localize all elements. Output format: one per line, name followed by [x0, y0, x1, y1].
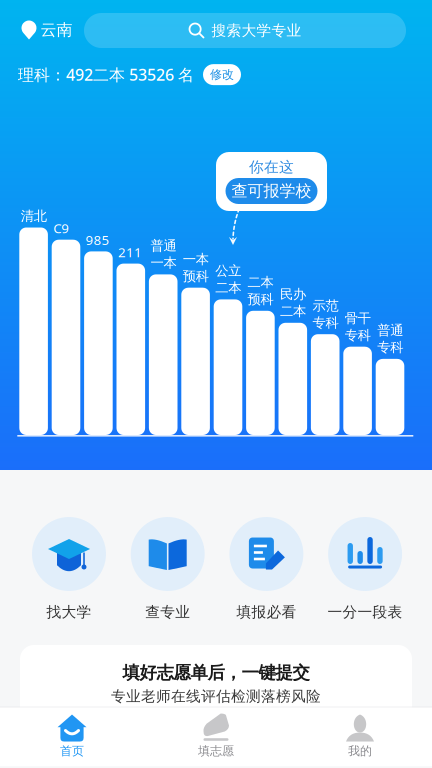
staticText: 我的 — [348, 743, 372, 758]
staticText: C9 — [53, 219, 69, 237]
staticText: 民办 — [280, 286, 306, 302]
staticText: 查专业 — [145, 603, 190, 621]
staticText: 首页 — [60, 743, 84, 758]
staticText: 理科：492二本 53526 名 — [18, 64, 194, 85]
staticText: 专科 — [377, 339, 403, 356]
staticText: 填好志愿单后，一键提交 — [122, 662, 309, 683]
staticText: 示范 — [312, 297, 338, 314]
staticText: 修改 — [210, 67, 234, 82]
staticText: 填报必看 — [236, 603, 296, 621]
staticText: 填志愿 — [198, 743, 234, 758]
button[interactable]: 填报必看 — [229, 517, 303, 621]
button[interactable]: 首页 — [0, 707, 144, 766]
staticText: 预科 — [183, 268, 209, 284]
staticText: 清北 — [21, 208, 47, 224]
staticText: 985 — [86, 231, 110, 249]
staticText: 一本 — [183, 251, 209, 267]
staticText: 预科 — [248, 291, 274, 307]
button[interactable]: 查专业 — [131, 517, 205, 621]
staticText: 你在这 — [249, 158, 294, 176]
button[interactable]: 搜索大学专业 — [84, 13, 406, 48]
button[interactable]: 修改 — [203, 64, 241, 85]
staticText: 专科 — [345, 327, 371, 343]
staticText: 211 — [118, 243, 142, 261]
staticText: 专业老师在线评估检测落榜风险 — [111, 687, 321, 705]
button[interactable]: 一分一段表 — [328, 517, 403, 621]
staticText: 一本 — [150, 255, 176, 271]
staticText: 二本 — [248, 274, 274, 290]
staticText: 搜索大学专业 — [211, 21, 301, 39]
button[interactable]: 填志愿 — [144, 707, 288, 766]
staticText: 普通 — [377, 322, 403, 339]
staticText: 专科 — [312, 314, 338, 331]
staticText: 二本 — [215, 280, 241, 296]
staticText: 查可报学校 — [231, 181, 311, 201]
staticText: 找大学 — [46, 603, 91, 621]
button[interactable]: 云南 — [16, 12, 78, 48]
staticText: 骨干 — [345, 310, 371, 326]
staticText: 云南 — [40, 20, 72, 40]
button[interactable]: 填好志愿单后，一键提交 — [20, 645, 412, 727]
button[interactable]: 查可报学校 — [225, 178, 317, 204]
staticText: 二本 — [280, 303, 306, 319]
button[interactable]: 找大学 — [32, 517, 106, 621]
button[interactable]: 我的 — [288, 707, 432, 766]
staticText: 一分一段表 — [328, 603, 403, 621]
staticText: 普通 — [150, 238, 176, 254]
staticText: 公立 — [215, 263, 241, 279]
